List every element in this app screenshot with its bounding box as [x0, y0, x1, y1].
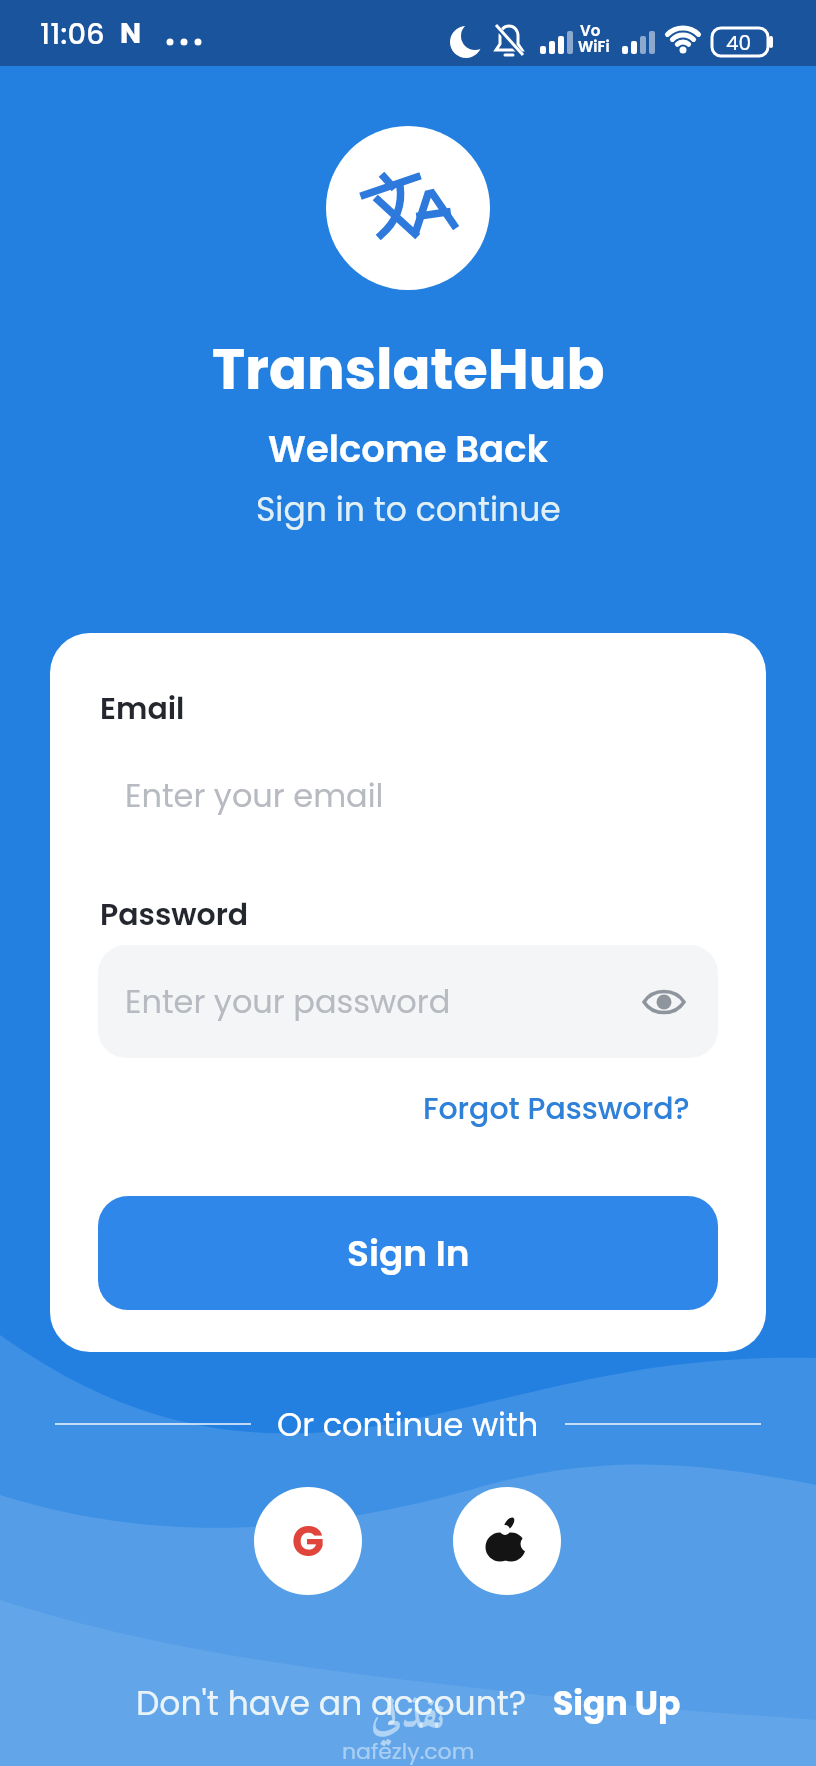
- staticText: Sign In: [347, 1228, 470, 1278]
- staticText: نفذلي: [371, 1680, 445, 1754]
- staticText: Email: [100, 688, 185, 730]
- button[interactable]: Sign In: [98, 1196, 718, 1310]
- staticText: 11:06: [40, 14, 105, 55]
- staticText: Welcome Back: [268, 423, 549, 475]
- staticText: Enter your email: [125, 773, 384, 818]
- staticText: nafezly.com: [342, 1736, 475, 1766]
- button[interactable]: Don't have an account?: [136, 1680, 681, 1726]
- staticText: Vo: [580, 20, 601, 41]
- button[interactable]: Enter your password: [98, 945, 718, 1058]
- staticText: Sign in to continue: [256, 486, 561, 532]
- staticText: Forgot Password?: [423, 1088, 690, 1130]
- staticText: WiFi: [578, 36, 610, 57]
- staticText: Sign Up: [553, 1680, 681, 1726]
- staticText: 40: [726, 29, 752, 57]
- staticText: TranslateHub: [212, 330, 605, 408]
- staticText: Enter your password: [125, 979, 451, 1024]
- staticText: Or continue with: [277, 1402, 539, 1447]
- button[interactable]: G: [254, 1487, 362, 1595]
- staticText: Password: [100, 894, 249, 936]
- button[interactable]: Enter your email: [98, 739, 718, 852]
- button[interactable]: Forgot Password?: [410, 1085, 690, 1133]
- staticText: G: [292, 1512, 325, 1571]
- staticText: N: [120, 14, 142, 53]
- button[interactable]: [453, 1487, 561, 1595]
- staticText: Don't have an account?: [136, 1680, 527, 1726]
